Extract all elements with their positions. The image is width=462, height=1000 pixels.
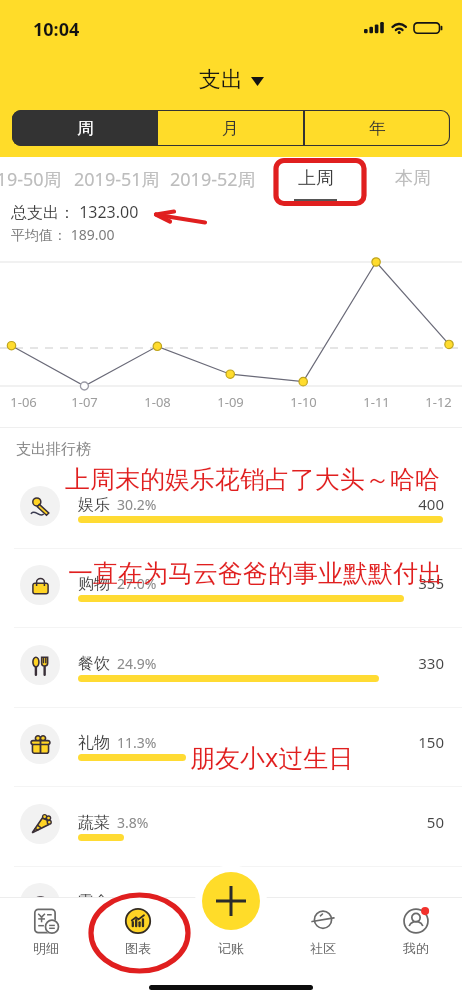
button[interactable]: 零食 <box>0 866 462 946</box>
staticText: 1-12 <box>425 393 452 411</box>
staticText: 400 <box>418 494 444 514</box>
staticText: 总支出： 1323.00 <box>11 201 139 223</box>
button[interactable]: 购物 <box>0 548 462 628</box>
staticText: 30 <box>426 891 444 911</box>
button[interactable]: 图表 <box>92 897 184 967</box>
button[interactable]: 月 <box>158 110 303 146</box>
staticText: 24.9% <box>117 654 157 673</box>
staticText: 记账 <box>218 940 244 956</box>
button[interactable]: 周 <box>12 110 158 146</box>
staticText: 支出排行榜 <box>16 440 91 459</box>
staticText: 平均值： 189.00 <box>11 225 115 244</box>
staticText: 1-11 <box>363 393 390 411</box>
staticText: 2019-50周 <box>0 167 62 192</box>
staticText: 2019-51周 <box>74 167 160 192</box>
staticText: 零食 <box>78 892 110 912</box>
staticText: 10:04 <box>33 17 80 42</box>
staticText: 2019-52周 <box>170 167 256 192</box>
staticText: 27.0% <box>117 574 157 593</box>
staticText: 年 <box>369 118 386 139</box>
button[interactable]: 上周 <box>266 157 364 204</box>
button[interactable]: 2019-51周 <box>68 157 166 204</box>
button[interactable]: 明细 <box>0 897 92 967</box>
staticText: 30.2% <box>117 495 157 514</box>
staticText: 1-08 <box>144 393 171 411</box>
staticText: 朋友小x过生日 <box>190 740 354 774</box>
staticText: 355 <box>418 573 444 593</box>
staticText: 上周末的娱乐花销占了大头～哈哈 <box>65 464 440 495</box>
button[interactable]: 我的 <box>370 897 462 967</box>
button[interactable]: 餐饮 <box>0 628 462 708</box>
button[interactable]: 年 <box>305 110 450 146</box>
staticText: 社区 <box>310 940 336 956</box>
button[interactable]: 蔬菜 <box>0 787 462 867</box>
staticText: 餐饮 <box>78 654 110 674</box>
staticText: 周 <box>77 118 94 139</box>
staticText: 礼物 <box>78 733 110 753</box>
staticText: 图表 <box>125 940 151 956</box>
button[interactable]: 支出 <box>199 66 264 94</box>
staticText: 蔬菜 <box>78 813 110 833</box>
button[interactable]: 2019-52周 <box>164 157 262 204</box>
button[interactable]: 本周 <box>363 157 461 204</box>
button[interactable]: 2019-50周 <box>0 157 68 204</box>
staticText: 330 <box>418 653 444 673</box>
staticText: 支出 <box>199 66 243 94</box>
button[interactable]: 娱乐 <box>0 469 462 549</box>
staticText: 1-07 <box>71 393 98 411</box>
button[interactable]: 记账 Add transaction <box>202 872 260 930</box>
staticText: 1-10 <box>290 393 317 411</box>
staticText: 上周 <box>298 167 334 190</box>
staticText: 1-09 <box>217 393 244 411</box>
staticText: 我的 <box>403 940 429 956</box>
staticText: 娱乐 <box>78 495 110 515</box>
button[interactable]: 礼物 <box>0 707 462 787</box>
staticText: 2.3% <box>117 892 149 911</box>
button[interactable]: 记账 <box>185 897 277 967</box>
staticText: 月 <box>222 118 239 139</box>
staticText: 一直在为马云爸爸的事业默默付出 <box>68 558 443 589</box>
staticText: 明细 <box>33 940 59 956</box>
staticText: 1-06 <box>10 393 37 411</box>
staticText: 11.3% <box>117 733 157 752</box>
staticText: 50 <box>426 812 444 832</box>
button[interactable]: 社区 <box>277 897 369 967</box>
staticText: 本周 <box>395 167 431 190</box>
staticText: 3.8% <box>117 813 149 832</box>
staticText: 150 <box>418 732 444 752</box>
staticText: 购物 <box>78 574 110 594</box>
